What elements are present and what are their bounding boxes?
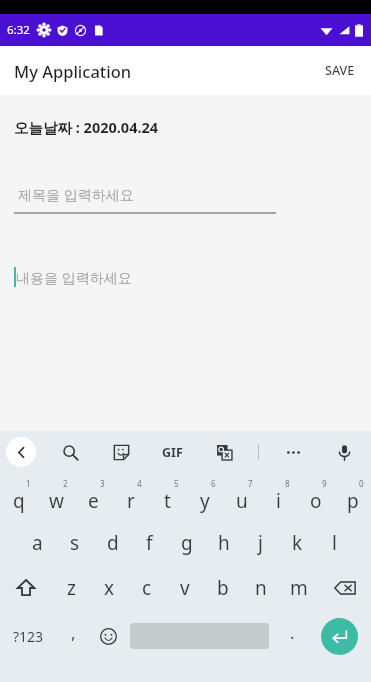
button[interactable]: , — [56, 610, 90, 662]
button[interactable]: l — [316, 520, 353, 565]
button[interactable]: Enter — [321, 618, 358, 655]
staticText: , — [71, 621, 76, 644]
button[interactable]: 1 — [0, 475, 38, 520]
button[interactable]: v — [166, 565, 204, 610]
button[interactable]: 8 — [260, 475, 297, 520]
staticText: p — [347, 488, 359, 514]
button[interactable]: GIF — [158, 440, 187, 465]
button[interactable]: f — [131, 520, 168, 565]
staticText: a — [32, 530, 43, 556]
button[interactable]: 내용을 입력하세요 — [14, 262, 371, 292]
button[interactable]: 제목을 입력하세요 — [14, 180, 276, 214]
staticText: i — [276, 488, 281, 514]
button[interactable]: Emoji — [90, 610, 126, 662]
staticText: q — [13, 488, 25, 514]
staticText: 7 — [248, 478, 253, 489]
button[interactable]: h — [205, 520, 242, 565]
staticText: u — [236, 488, 248, 514]
button[interactable]: SAVE — [315, 54, 365, 87]
button[interactable]: ?123 — [0, 610, 56, 662]
staticText: w — [49, 488, 64, 514]
staticText: 3 — [100, 478, 105, 489]
staticText: e — [88, 488, 99, 514]
staticText: z — [67, 575, 76, 601]
staticText: 오늘날짜 : 2020.04.24 — [14, 117, 159, 137]
button[interactable]: 2 — [38, 475, 75, 520]
button[interactable]: 5 — [149, 475, 186, 520]
button[interactable]: n — [242, 565, 280, 610]
staticText: 9 — [322, 478, 327, 489]
staticText: h — [218, 530, 230, 556]
staticText: f — [146, 530, 153, 556]
staticText: t — [164, 488, 171, 514]
staticText: n — [255, 575, 267, 601]
staticText: 5 — [174, 478, 179, 489]
button[interactable]: j — [242, 520, 279, 565]
button[interactable]: g — [168, 520, 205, 565]
staticText: x — [104, 575, 115, 601]
staticText: v — [180, 575, 190, 601]
staticText: 2 — [63, 478, 68, 489]
button[interactable]: 4 — [112, 475, 149, 520]
staticText: 제목을 입력하세요 — [18, 185, 134, 204]
staticText: b — [217, 575, 229, 601]
button[interactable]: b — [204, 565, 242, 610]
button[interactable]: Back — [6, 437, 36, 467]
button[interactable]: k — [279, 520, 316, 565]
staticText: 1 — [26, 478, 31, 489]
button[interactable]: 9 — [297, 475, 334, 520]
staticText: 6:32 — [7, 22, 30, 38]
staticText: s — [70, 530, 80, 556]
button[interactable]: Shift — [0, 565, 52, 610]
button[interactable]: More options — [278, 437, 308, 467]
staticText: SAVE — [325, 62, 355, 79]
staticText: d — [107, 530, 119, 556]
button[interactable]: 7 — [223, 475, 260, 520]
button[interactable]: Stickers — [106, 437, 136, 467]
button[interactable]: 0 — [334, 475, 371, 520]
staticText: r — [127, 488, 135, 514]
button[interactable]: Voice input — [329, 437, 359, 467]
staticText: 8 — [285, 478, 290, 489]
button[interactable]: 6 — [186, 475, 223, 520]
button[interactable]: d — [94, 520, 131, 565]
staticText: o — [310, 488, 322, 514]
staticText: l — [332, 530, 337, 556]
button[interactable]: Backspace — [318, 565, 371, 610]
staticText: . — [290, 621, 295, 644]
staticText: y — [200, 488, 210, 514]
staticText: c — [142, 575, 152, 601]
staticText: j — [258, 530, 263, 556]
button[interactable]: z — [52, 565, 90, 610]
staticText: ?123 — [13, 627, 44, 646]
button[interactable]: c — [128, 565, 166, 610]
staticText: GIF — [162, 444, 183, 461]
staticText: My Application — [14, 60, 132, 82]
button[interactable]: 3 — [75, 475, 112, 520]
staticText: 4 — [137, 478, 142, 489]
button[interactable]: m — [280, 565, 318, 610]
button[interactable]: Translate — [209, 437, 239, 467]
button[interactable]: s — [56, 520, 94, 565]
button[interactable]: x — [90, 565, 128, 610]
staticText: 0 — [359, 478, 364, 489]
button[interactable]: . — [273, 610, 311, 662]
button[interactable]: a — [18, 520, 56, 565]
staticText: 내용을 입력하세요 — [16, 268, 132, 287]
staticText: 6 — [211, 478, 216, 489]
button[interactable]: Search — [55, 437, 85, 467]
staticText: g — [181, 530, 193, 556]
staticText: k — [292, 530, 303, 556]
staticText: m — [290, 575, 308, 601]
